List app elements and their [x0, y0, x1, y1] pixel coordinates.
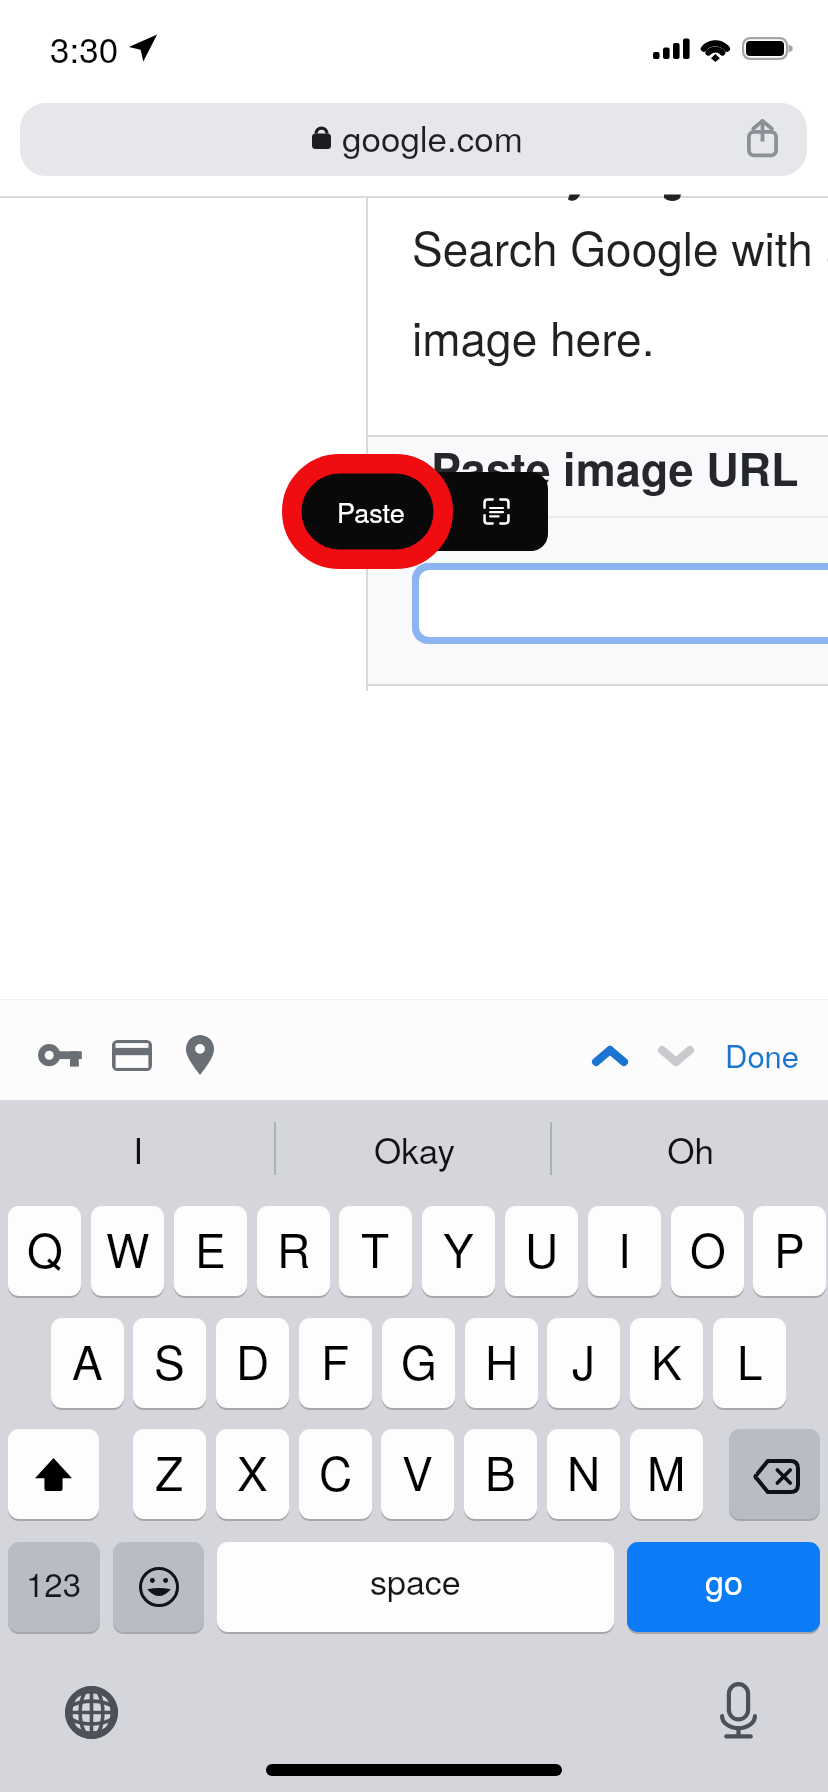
button[interactable]: Scan text: [444, 472, 548, 551]
button[interactable]: T: [339, 1206, 412, 1296]
staticText: U: [525, 1215, 559, 1281]
button[interactable]: Previous field: [578, 1032, 642, 1080]
staticText: C: [319, 1438, 353, 1504]
staticText: 3:30: [50, 23, 119, 73]
staticText: B: [485, 1438, 516, 1504]
staticText: Paste image URL: [431, 435, 799, 499]
button[interactable]: J: [547, 1318, 620, 1408]
staticText: google.com: [342, 112, 523, 162]
button[interactable]: Passwords: [24, 1040, 96, 1072]
button[interactable]: A: [51, 1318, 124, 1408]
button[interactable]: Dictate: [702, 1678, 774, 1742]
staticText: Y: [443, 1215, 474, 1281]
staticText: N: [567, 1438, 601, 1504]
button[interactable]: O: [671, 1206, 744, 1296]
staticText: J: [572, 1327, 595, 1393]
staticText: V: [402, 1438, 433, 1504]
button[interactable]: Emoji: [113, 1542, 204, 1632]
button[interactable]: Paste: [298, 472, 444, 551]
staticText: F: [321, 1327, 350, 1393]
staticText: W: [106, 1215, 150, 1281]
button[interactable]: K: [630, 1318, 703, 1408]
staticText: X: [237, 1438, 268, 1504]
staticText: K: [651, 1327, 682, 1393]
button[interactable]: Q: [8, 1206, 81, 1296]
button[interactable]: N: [547, 1429, 620, 1519]
staticText: I: [618, 1215, 631, 1281]
button[interactable]: E: [174, 1206, 247, 1296]
staticText: D: [236, 1327, 270, 1393]
staticText: Q: [27, 1215, 63, 1281]
button[interactable]: google.com: [20, 103, 807, 176]
staticText: 123: [26, 1559, 82, 1606]
button[interactable]: I: [588, 1206, 661, 1296]
staticText: P: [774, 1215, 805, 1281]
button[interactable]: F: [299, 1318, 372, 1408]
button[interactable]: I: [0, 1100, 276, 1198]
staticText: E: [195, 1215, 226, 1281]
button[interactable]: Z: [133, 1429, 206, 1519]
staticText: Search Google with a: [412, 213, 828, 279]
button[interactable]: Okay: [276, 1100, 552, 1198]
staticText: Oh: [667, 1124, 714, 1174]
staticText: M: [647, 1438, 686, 1504]
staticText: I: [133, 1124, 143, 1174]
button[interactable]: Share: [733, 103, 791, 174]
button[interactable]: M: [630, 1429, 703, 1519]
button[interactable]: Change keyboard: [55, 1682, 128, 1742]
staticText: A: [72, 1327, 103, 1393]
button[interactable]: Done: [719, 1025, 805, 1083]
staticText: image here.: [412, 303, 655, 369]
staticText: Okay: [374, 1124, 455, 1174]
staticText: G: [401, 1327, 437, 1393]
button[interactable]: go: [627, 1542, 820, 1632]
button[interactable]: H: [465, 1318, 538, 1408]
staticText: T: [361, 1215, 390, 1281]
button[interactable]: Oh: [552, 1100, 828, 1198]
staticText: space: [370, 1556, 461, 1605]
button[interactable]: G: [382, 1318, 455, 1408]
staticText: Paste: [337, 492, 405, 531]
staticText: go: [705, 1556, 743, 1605]
button[interactable]: Shift: [8, 1429, 99, 1519]
button[interactable]: B: [464, 1429, 537, 1519]
button[interactable]: L: [713, 1318, 786, 1408]
button[interactable]: X: [216, 1429, 289, 1519]
button[interactable]: R: [257, 1206, 330, 1296]
staticText: H: [485, 1327, 519, 1393]
button[interactable]: S: [133, 1318, 206, 1408]
button[interactable]: C: [299, 1429, 372, 1519]
button[interactable]: space: [217, 1542, 614, 1632]
button[interactable]: U: [505, 1206, 578, 1296]
button[interactable]: Next field: [644, 1032, 708, 1080]
staticText: L: [737, 1327, 763, 1393]
button[interactable]: 123: [8, 1542, 100, 1632]
button[interactable]: Location: [172, 1030, 228, 1080]
staticText: O: [690, 1215, 726, 1281]
button[interactable]: D: [216, 1318, 289, 1408]
button[interactable]: Credit card: [97, 1034, 167, 1076]
button[interactable]: W: [91, 1206, 164, 1296]
staticText: S: [154, 1327, 185, 1393]
button[interactable]: Y: [422, 1206, 495, 1296]
button[interactable]: Backspace: [729, 1429, 820, 1519]
staticText: Z: [155, 1438, 184, 1504]
staticText: R: [277, 1215, 311, 1281]
button[interactable]: V: [381, 1429, 454, 1519]
button[interactable]: P: [753, 1206, 826, 1296]
staticText: Done: [725, 1032, 800, 1076]
